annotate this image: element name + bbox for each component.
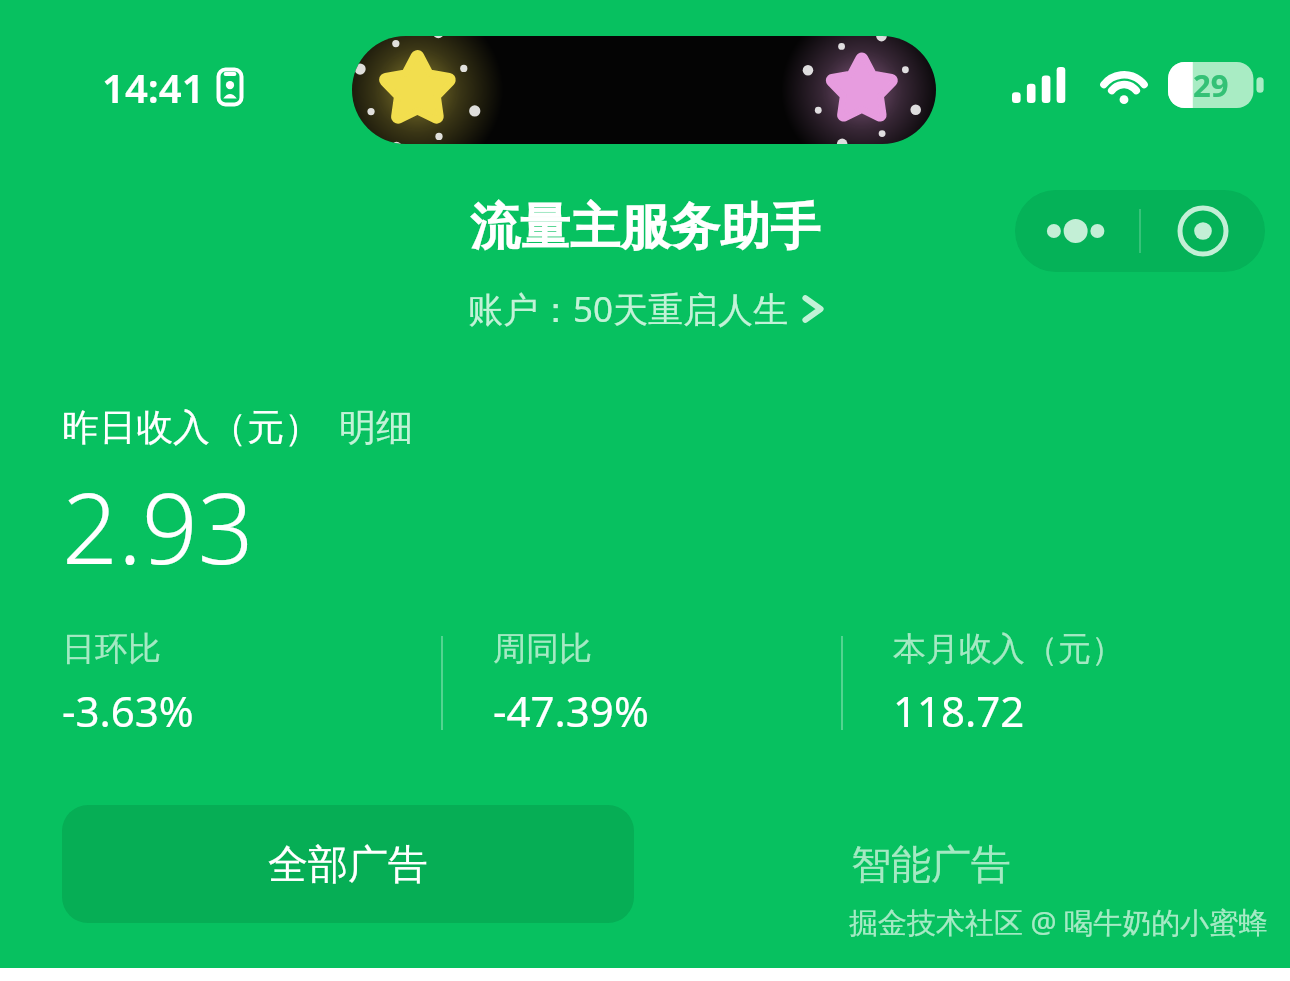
staticText: 118.72 [893, 682, 1025, 739]
staticText: 全部广告 [268, 839, 428, 889]
staticText: 2.93 [62, 459, 254, 592]
button[interactable]: Close [1141, 190, 1265, 272]
button[interactable]: 账户：50天重启人生 [468, 285, 823, 333]
staticText: 明细 [339, 404, 413, 451]
staticText: -47.39% [493, 682, 649, 739]
staticText: 掘金技术社区 @ 喝牛奶的小蜜蜂 [849, 902, 1268, 942]
staticText: 本月收入（元） [893, 628, 1124, 670]
staticText: 账户：50天重启人生 [468, 285, 789, 333]
button[interactable]: 明细 [339, 404, 413, 451]
staticText: 29 [1193, 64, 1229, 106]
staticText: 昨日收入（元） [62, 404, 321, 451]
staticText: -3.63% [62, 682, 194, 739]
button[interactable]: 全部广告 [62, 805, 634, 923]
staticText: 智能广告 [851, 839, 1011, 889]
staticText: 周同比 [493, 628, 592, 670]
button[interactable]: 智能广告 [634, 805, 1228, 923]
staticText: 日环比 [62, 628, 161, 670]
staticText: 流量主服务助手 [470, 196, 820, 259]
staticText: 14:41 [102, 60, 205, 114]
button[interactable]: More [1015, 190, 1139, 272]
